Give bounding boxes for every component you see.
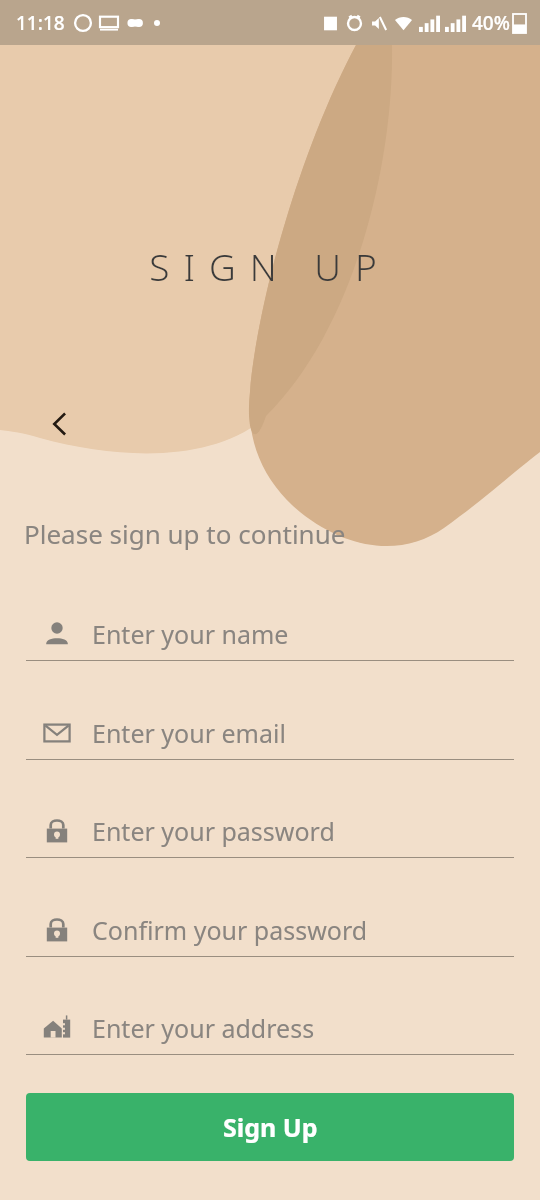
staticText: Enter your name: [92, 617, 289, 651]
button[interactable]: Enter your name: [26, 608, 514, 661]
staticText: Please sign up to continue: [24, 516, 346, 551]
staticText: Sign Up: [223, 1110, 318, 1144]
staticText: SIGN UP: [149, 241, 391, 291]
staticText: Enter your email: [92, 716, 286, 750]
button[interactable]: Enter your password: [26, 805, 514, 858]
staticText: 11:18: [16, 10, 65, 36]
staticText: Confirm your password: [92, 913, 368, 947]
button[interactable]: Sign Up: [26, 1093, 514, 1161]
staticText: Enter your password: [92, 814, 335, 848]
button[interactable]: Back: [34, 398, 86, 450]
button[interactable]: Enter your email: [26, 707, 514, 760]
staticText: 40%: [472, 10, 510, 36]
staticText: Enter your address: [92, 1011, 315, 1045]
button[interactable]: Confirm your password: [26, 904, 514, 957]
button[interactable]: Enter your address: [26, 1002, 514, 1055]
